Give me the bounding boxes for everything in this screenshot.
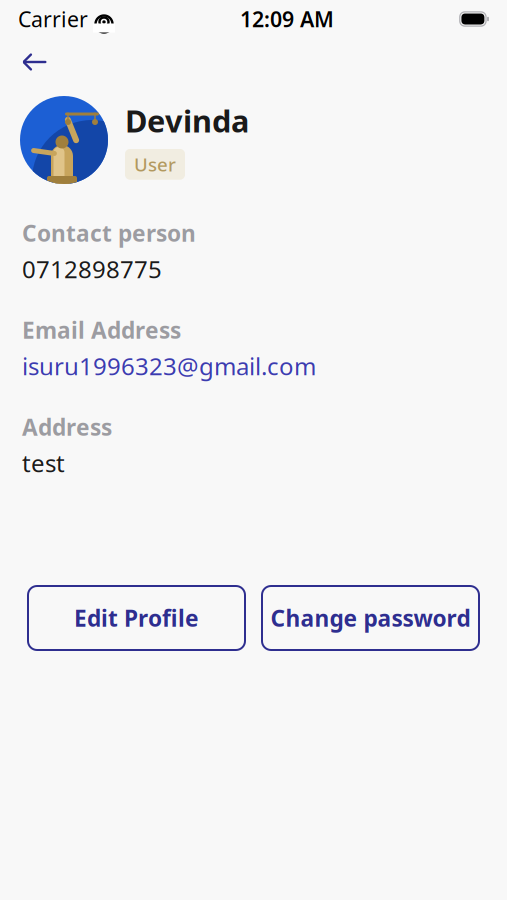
staticText: Contact person bbox=[22, 218, 196, 248]
staticText: Edit Profile bbox=[74, 603, 199, 633]
staticText: Change password bbox=[270, 603, 470, 633]
staticText: Carrier bbox=[18, 5, 88, 33]
staticText: isuru1996323@gmail.com bbox=[22, 350, 316, 382]
staticText: Address bbox=[22, 412, 112, 442]
staticText: 12:09 AM bbox=[240, 5, 334, 33]
button[interactable]: Back bbox=[8, 40, 62, 84]
staticText: Email Address bbox=[22, 315, 181, 345]
staticText: test bbox=[22, 447, 65, 479]
staticText: 0712898775 bbox=[22, 253, 162, 285]
staticText: User bbox=[134, 152, 176, 177]
staticText: Devinda bbox=[125, 100, 249, 141]
button[interactable]: Edit Profile bbox=[28, 586, 245, 650]
button[interactable]: Change password bbox=[262, 586, 479, 650]
